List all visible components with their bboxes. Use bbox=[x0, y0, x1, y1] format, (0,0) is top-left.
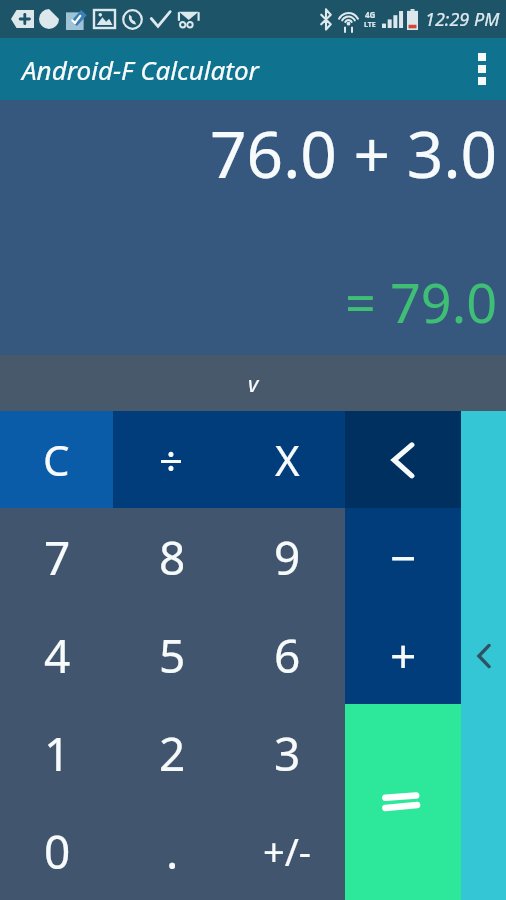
staticText: LTE bbox=[364, 20, 376, 30]
staticText: Android-F Calculator bbox=[22, 52, 259, 87]
staticText: X bbox=[275, 431, 300, 488]
staticText: 2 bbox=[159, 722, 186, 785]
button[interactable]: 3 bbox=[230, 704, 345, 802]
button[interactable]: 9 bbox=[230, 508, 345, 606]
button[interactable]: 76.0 + 3.0 bbox=[0, 100, 506, 355]
staticText: 76.0 + 3.0 bbox=[210, 110, 498, 197]
button[interactable]: More options bbox=[458, 38, 506, 100]
button[interactable]: 7 bbox=[0, 508, 115, 606]
staticText: = 79.0 bbox=[345, 265, 498, 339]
staticText: 0 bbox=[44, 820, 71, 883]
button[interactable]: 1 bbox=[0, 704, 115, 802]
staticText: + bbox=[390, 624, 417, 687]
button[interactable]: C bbox=[0, 411, 113, 508]
staticText: − bbox=[390, 526, 417, 589]
button[interactable]: + bbox=[345, 606, 461, 704]
button[interactable]: ÷ bbox=[113, 411, 229, 508]
button[interactable]: 2 bbox=[115, 704, 230, 802]
staticText: 8 bbox=[159, 526, 186, 589]
button[interactable]: − bbox=[345, 508, 461, 606]
button[interactable]: Open side panel bbox=[461, 411, 506, 900]
button[interactable]: 6 bbox=[230, 606, 345, 704]
button[interactable]: Equals bbox=[345, 704, 461, 900]
button[interactable]: 4 bbox=[0, 606, 115, 704]
staticText: 12:29 PM bbox=[425, 7, 500, 32]
button[interactable]: +/- bbox=[230, 802, 345, 900]
staticText: 4G bbox=[365, 9, 376, 20]
button[interactable]: X bbox=[229, 411, 345, 508]
staticText: ÷ bbox=[159, 431, 184, 488]
staticText: 1 bbox=[44, 722, 71, 785]
staticText: 4 bbox=[44, 624, 71, 687]
staticText: 9 bbox=[274, 526, 301, 589]
staticText: +/- bbox=[263, 825, 312, 877]
button[interactable]: 0 bbox=[0, 802, 115, 900]
staticText: 6 bbox=[274, 624, 301, 687]
button[interactable]: Expand history bbox=[0, 355, 506, 411]
staticText: 5 bbox=[159, 624, 186, 687]
button[interactable]: 5 bbox=[115, 606, 230, 704]
staticText: 7 bbox=[44, 526, 71, 589]
staticText: 3 bbox=[274, 722, 301, 785]
staticText: C bbox=[43, 431, 70, 488]
button[interactable]: 8 bbox=[115, 508, 230, 606]
staticText: v bbox=[248, 368, 259, 398]
button[interactable]: Backspace bbox=[345, 411, 461, 508]
staticText: . bbox=[166, 820, 179, 883]
button[interactable]: . bbox=[115, 802, 230, 900]
